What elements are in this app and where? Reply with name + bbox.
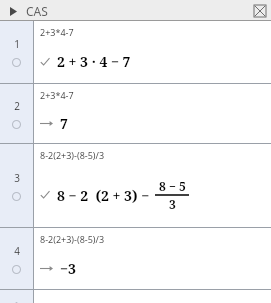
button[interactable]: 2+3*4-7 — [34, 84, 271, 143]
staticText: 1 — [14, 37, 20, 51]
staticText: 8 − 2 (2 + 3) − — [57, 186, 150, 205]
staticText: 2 — [14, 99, 20, 113]
button[interactable]: Close — [253, 4, 267, 18]
staticText: 7 — [60, 114, 68, 133]
staticText: −3 — [60, 259, 76, 278]
button[interactable]: 8-2(2+3)-(8-5)/3 — [34, 228, 271, 289]
staticText: 3 — [169, 196, 176, 212]
button[interactable]: 8-2(2+3)-(8-5)/3 — [34, 144, 271, 227]
staticText: 4 — [14, 244, 20, 258]
button[interactable]: 2+3*4-7 — [34, 21, 271, 83]
button[interactable]: Expand CAS view — [6, 4, 20, 18]
staticText: 2+3*4-7 — [40, 89, 74, 101]
button[interactable]: 4 — [0, 228, 33, 289]
staticText: 8-2(2+3)-(8-5)/3 — [40, 149, 105, 161]
staticText: 3 — [14, 171, 20, 185]
staticText: 2 + 3 · 4 − 7 — [57, 52, 131, 71]
staticText: 8-2(2+3)-(8-5)/3 — [40, 233, 105, 245]
button[interactable]: 1 — [0, 21, 33, 83]
staticText: 2+3*4-7 — [40, 26, 74, 38]
button[interactable]: 2 — [0, 84, 33, 143]
staticText: CAS — [26, 3, 48, 19]
staticText: 8 − 5 — [159, 178, 186, 194]
button[interactable]: 3 — [0, 144, 33, 227]
